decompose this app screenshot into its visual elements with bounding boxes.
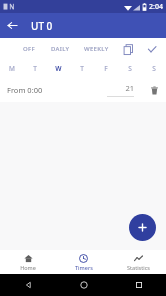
button[interactable]: S [118,59,142,77]
staticText: F [104,64,108,73]
button[interactable]: T [23,59,46,77]
button[interactable]: S [142,59,166,77]
staticText: T [80,64,84,73]
staticText: W [55,64,62,73]
button[interactable]: Confirm [142,39,162,59]
button[interactable]: Add timer [129,214,156,241]
button[interactable]: Timers [56,250,111,274]
button[interactable]: F [94,59,118,77]
staticText: DAILY [51,45,70,53]
staticText: Statistics [127,264,150,271]
button[interactable]: Back [0,13,25,38]
button[interactable]: Delete [145,81,163,99]
button[interactable]: T [70,59,94,77]
staticText: Timers [75,264,93,271]
button[interactable]: Back [0,274,56,296]
staticText: From 0:00 [7,85,43,95]
staticText: S [128,64,132,73]
button[interactable]: OFF [22,41,36,57]
staticText: WEEKLY [84,45,109,53]
button[interactable]: Copy [118,39,138,59]
staticText: 21 [125,83,134,93]
staticText: OFF [23,45,35,53]
staticText: T [33,64,37,73]
staticText: 2:04 [149,2,163,12]
button[interactable]: WEEKLY [83,41,110,57]
button[interactable]: W [46,59,70,77]
button[interactable]: Recent apps [111,274,166,296]
staticText: S [152,64,156,73]
button[interactable]: M [0,59,23,77]
staticText: UT 0 [31,19,53,33]
staticText: Home [20,264,36,271]
button[interactable]: Statistics [111,250,166,274]
button[interactable]: DAILY [50,41,71,57]
button[interactable]: From 0:00 [0,77,166,102]
button[interactable]: Home [0,250,56,274]
button[interactable]: Home [56,274,111,296]
staticText: M [9,64,15,73]
